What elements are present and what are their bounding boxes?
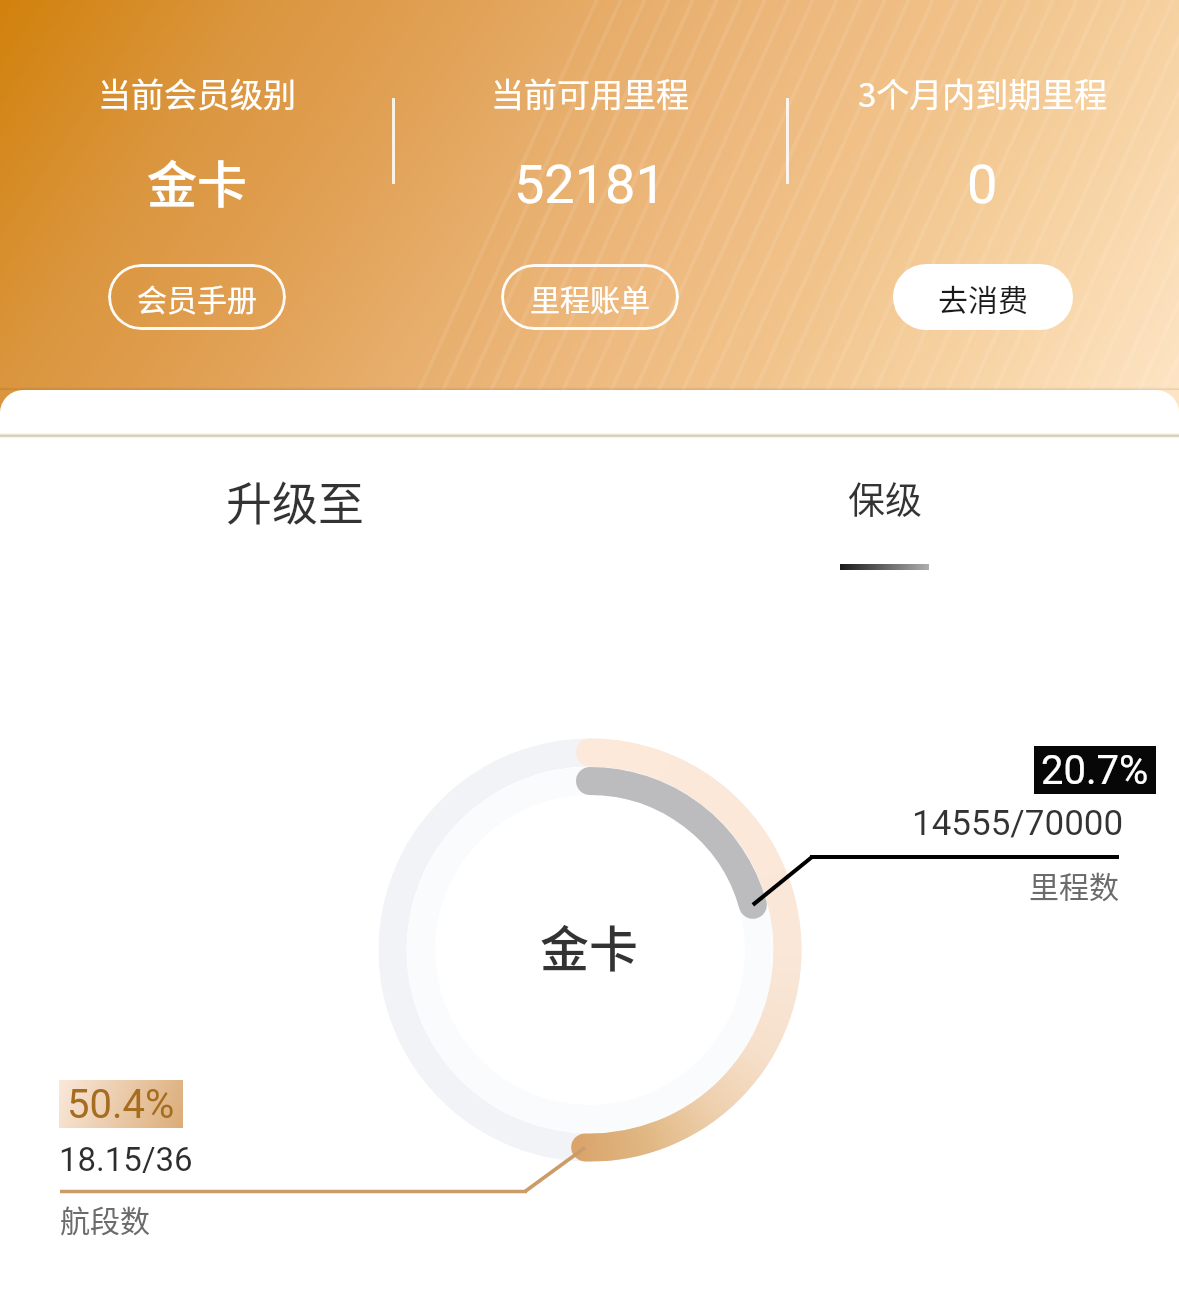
button[interactable]: 会员手册 — [108, 264, 286, 330]
button[interactable]: 保级 — [589, 441, 1179, 591]
staticText: 金卡 — [540, 910, 639, 981]
staticText: 52181 — [514, 153, 666, 216]
staticText: 会员手册 — [137, 276, 257, 319]
staticText: 保级 — [848, 471, 922, 525]
staticText: 航段数 — [60, 1197, 150, 1240]
staticText: 里程账单 — [530, 276, 650, 319]
staticText: 0 — [967, 153, 998, 216]
staticText: 当前会员级别 — [98, 69, 296, 117]
staticText: 当前可用里程 — [491, 69, 689, 117]
staticText: 里程数 — [1029, 863, 1119, 906]
staticText: 金卡 — [147, 145, 247, 217]
staticText: 3个月内到期里程 — [858, 69, 1108, 117]
staticText: 20.7% — [1041, 747, 1149, 794]
staticText: 14555/70000 — [912, 803, 1124, 844]
staticText: 18.15/36 — [59, 1140, 193, 1179]
staticText: 50.4% — [67, 1081, 175, 1128]
button[interactable]: 里程账单 — [501, 264, 679, 330]
staticText: 去消费 — [938, 276, 1028, 319]
staticText: 升级至 — [226, 467, 364, 534]
button[interactable]: 升级至 — [0, 441, 589, 591]
button[interactable]: 去消费 — [893, 264, 1073, 330]
